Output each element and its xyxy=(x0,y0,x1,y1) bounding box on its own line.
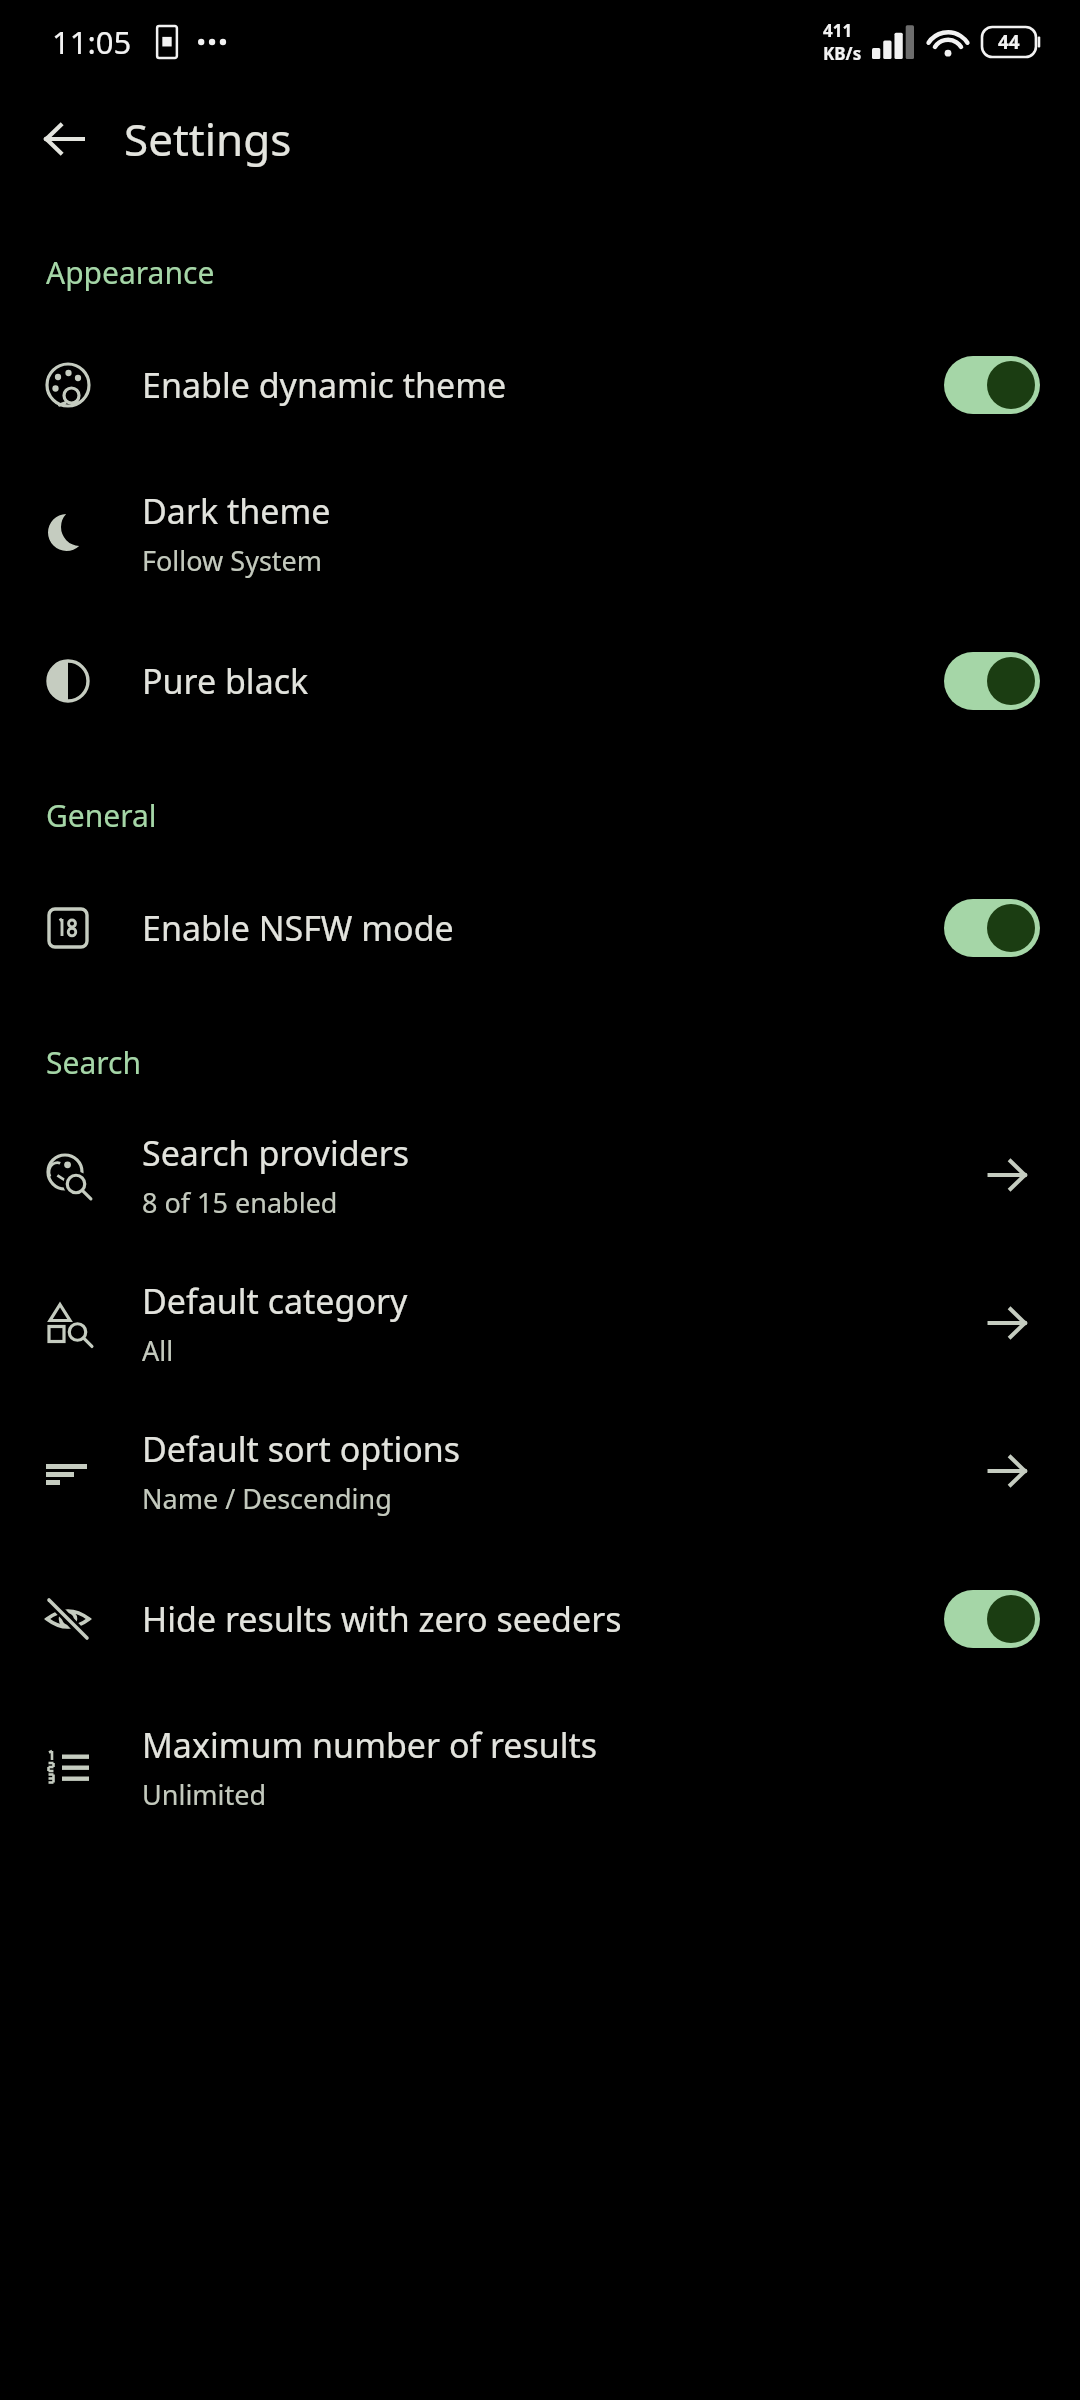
staticText: Default category xyxy=(142,1278,408,1324)
button[interactable]: Open xyxy=(976,1143,1040,1207)
staticText: Search xyxy=(46,1042,141,1083)
staticText: Maximum number of results xyxy=(142,1722,598,1768)
staticText: 44 xyxy=(998,29,1020,55)
staticText: Default sort options xyxy=(142,1426,461,1472)
staticText: Appearance xyxy=(46,252,215,293)
staticText: 8 of 15 enabled xyxy=(142,1184,338,1221)
staticText: 11:05 xyxy=(52,21,132,63)
staticText: All xyxy=(142,1332,174,1369)
staticText: Hide results with zero seeders xyxy=(142,1596,622,1642)
staticText: General xyxy=(46,795,157,836)
button[interactable]: Default sort options xyxy=(0,1397,1080,1545)
staticText: 411 xyxy=(823,19,853,42)
button[interactable]: Toggle xyxy=(944,899,1040,957)
staticText: Settings xyxy=(124,109,292,169)
staticText: Pure black xyxy=(142,658,309,704)
staticText: Name / Descending xyxy=(142,1480,392,1517)
button[interactable]: Back xyxy=(26,101,102,177)
button[interactable]: Enable dynamic theme xyxy=(0,311,1080,459)
button[interactable]: Open xyxy=(976,1291,1040,1355)
button[interactable]: Toggle xyxy=(944,652,1040,710)
staticText: Follow System xyxy=(142,542,323,579)
button[interactable]: Hide results with zero seeders xyxy=(0,1545,1080,1693)
staticText: Search providers xyxy=(142,1130,410,1176)
staticText: Enable NSFW mode xyxy=(142,905,454,951)
staticText: KB/s xyxy=(823,42,862,65)
button[interactable]: Maximum number of results xyxy=(0,1693,1080,1841)
staticText: Unlimited xyxy=(142,1776,267,1813)
button[interactable]: Default category xyxy=(0,1249,1080,1397)
button[interactable]: Search providers xyxy=(0,1101,1080,1249)
staticText: Enable dynamic theme xyxy=(142,362,507,408)
staticText: Dark theme xyxy=(142,488,331,534)
button[interactable]: Pure black xyxy=(0,607,1080,755)
button[interactable]: Toggle xyxy=(944,1590,1040,1648)
button[interactable]: Enable NSFW mode xyxy=(0,854,1080,1002)
button[interactable]: Toggle xyxy=(944,356,1040,414)
button[interactable]: Open xyxy=(976,1439,1040,1503)
button[interactable]: Dark theme xyxy=(0,459,1080,607)
